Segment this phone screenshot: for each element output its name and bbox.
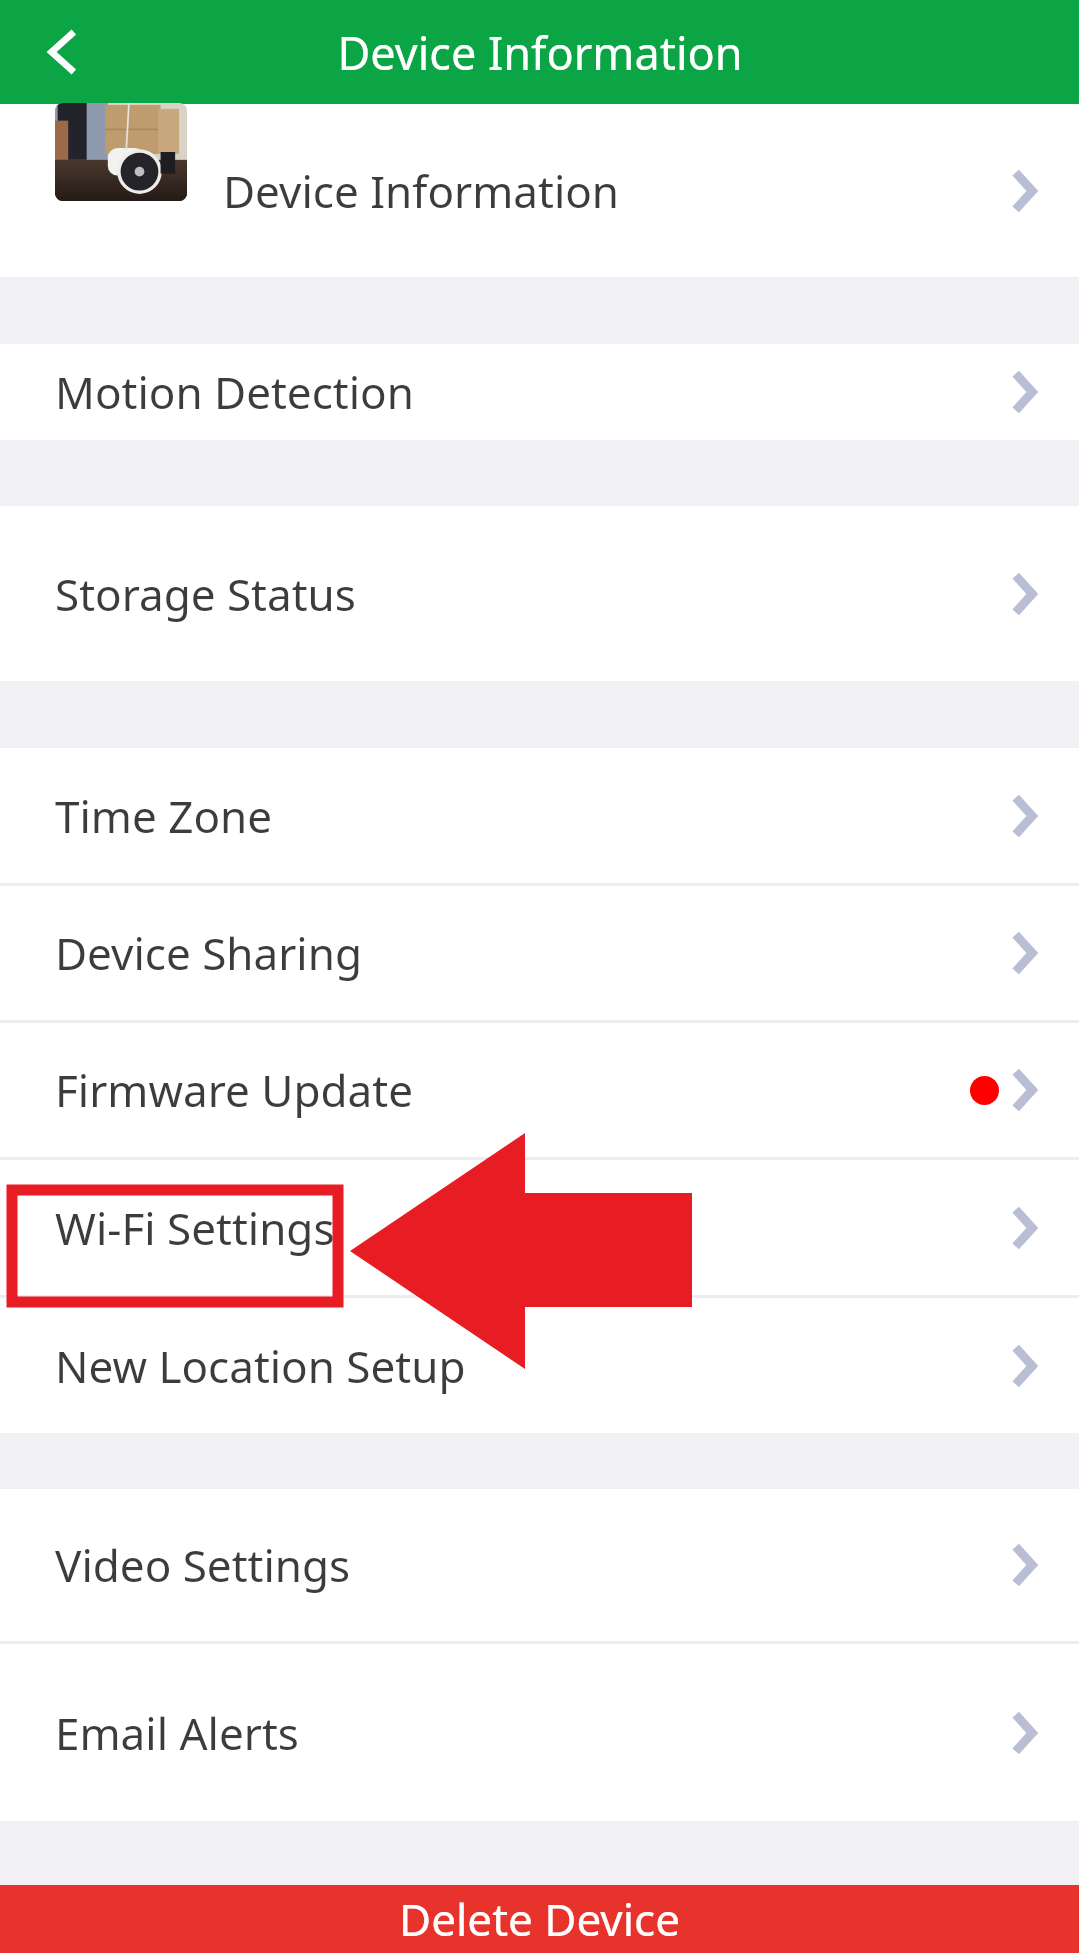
button[interactable]: Back [18, 8, 106, 96]
staticText: Video Settings [55, 1535, 351, 1595]
staticText: Wi-Fi Settings [55, 1198, 335, 1258]
button[interactable]: New Location Setup [0, 1298, 1079, 1433]
button[interactable]: Device Sharing [0, 886, 1079, 1020]
staticText: Motion Detection [55, 362, 414, 422]
button[interactable]: Storage Status [0, 506, 1079, 681]
button[interactable]: Video Settings [0, 1489, 1079, 1641]
staticText: Delete Device [399, 1889, 680, 1949]
button[interactable]: Delete Device [0, 1885, 1079, 1953]
button[interactable]: Time Zone [0, 748, 1079, 883]
staticText: Storage Status [55, 564, 356, 624]
staticText: Device Sharing [55, 923, 362, 983]
staticText: Firmware Update [55, 1060, 413, 1120]
staticText: Time Zone [55, 786, 273, 846]
button[interactable]: Wi-Fi Settings [0, 1160, 1079, 1295]
button[interactable]: Firmware Update [0, 1023, 1079, 1157]
staticText: Device Information [223, 161, 620, 221]
button[interactable]: Motion Detection [0, 344, 1079, 440]
staticText: Device Information [337, 22, 743, 83]
button[interactable]: Device Information [0, 104, 1079, 277]
staticText: Email Alerts [55, 1703, 299, 1763]
button[interactable]: Email Alerts [0, 1644, 1079, 1821]
staticText: New Location Setup [55, 1336, 466, 1396]
